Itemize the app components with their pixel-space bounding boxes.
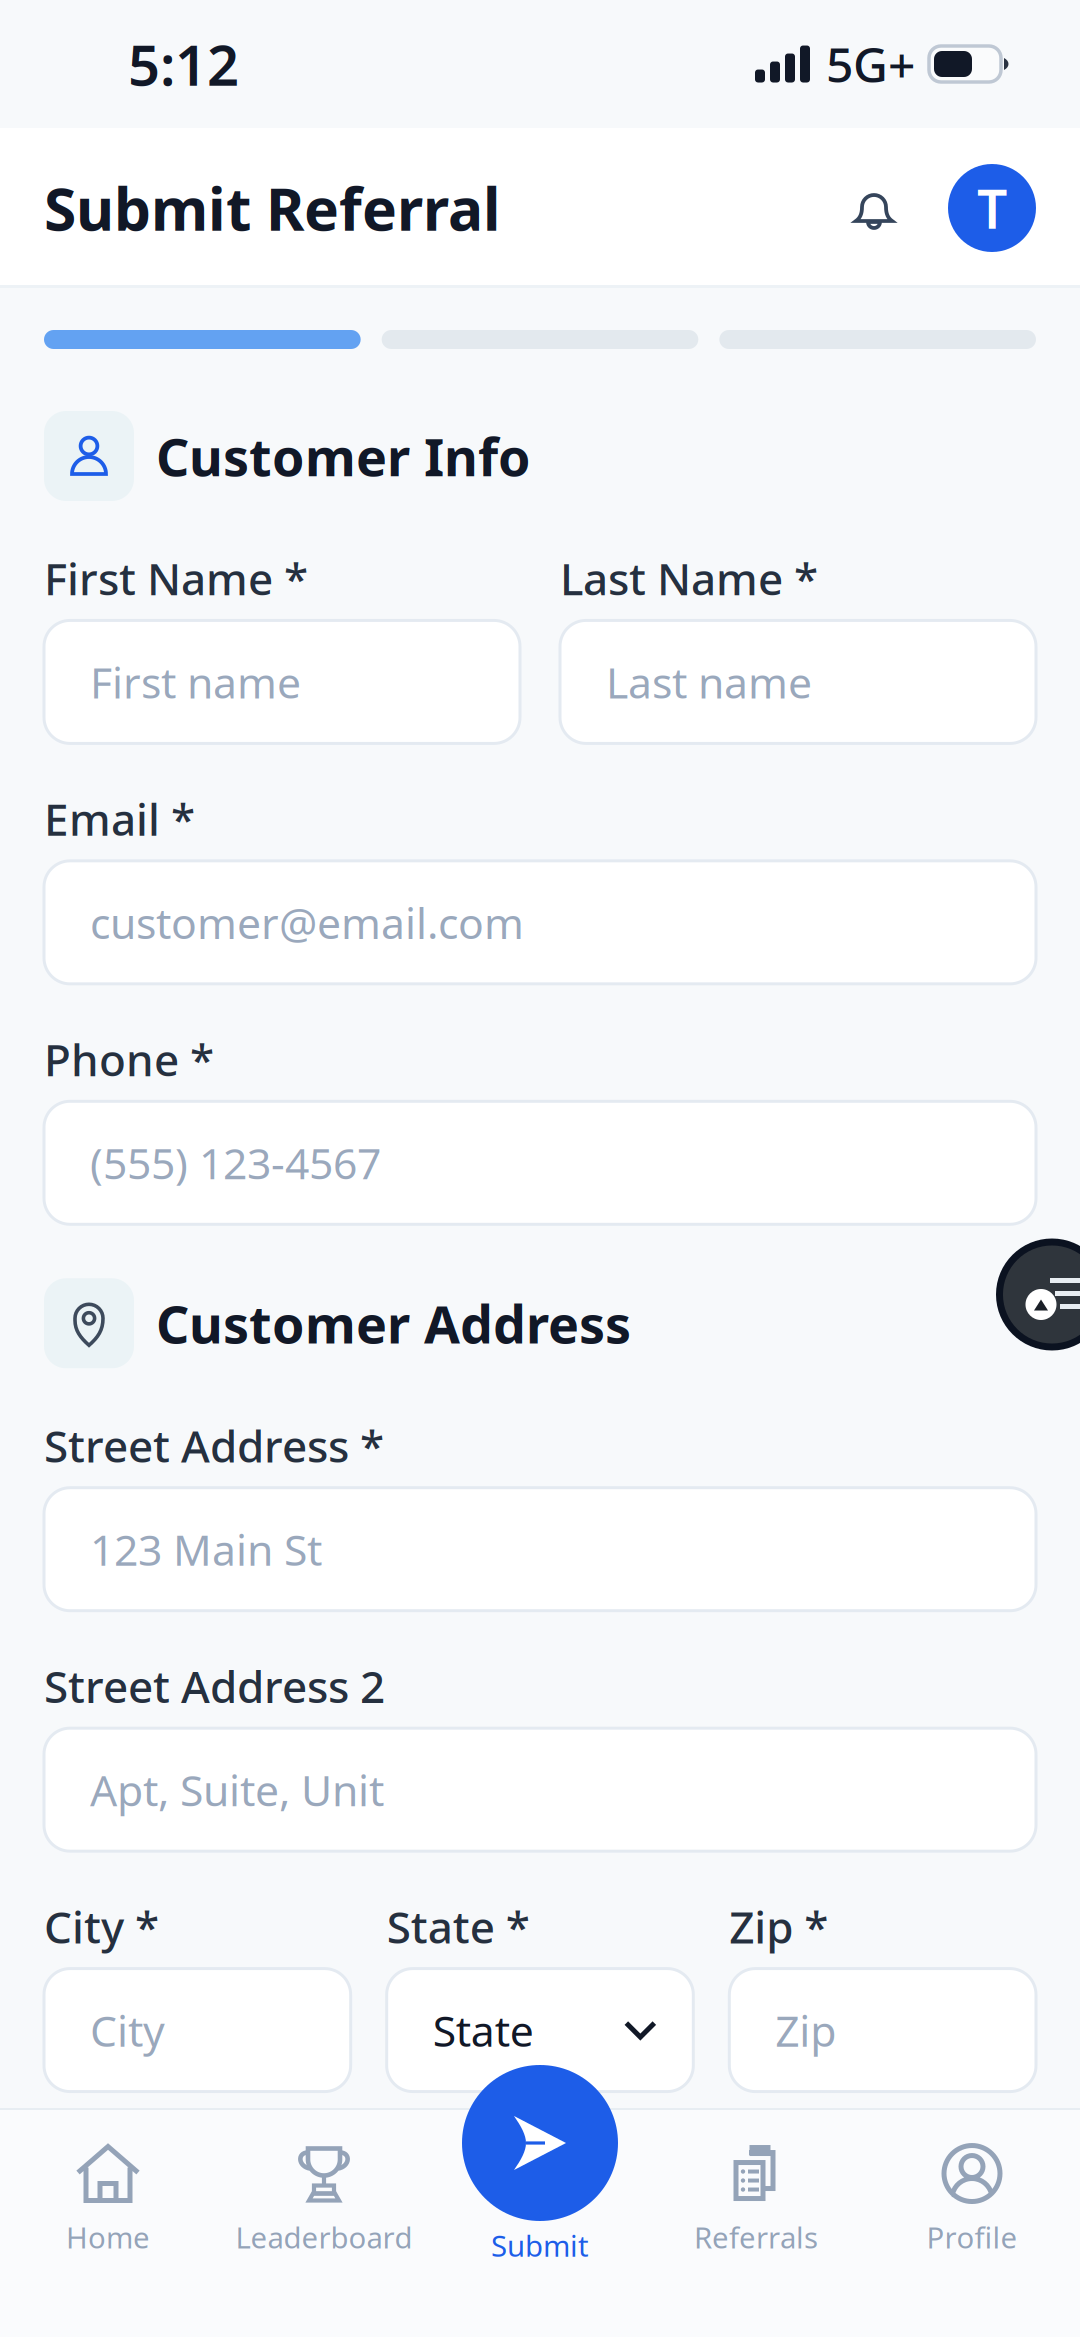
staticText: Home [66, 2217, 150, 2256]
staticText: First name [90, 654, 301, 710]
staticText: Submit Referral [44, 169, 500, 247]
staticText: 123 Main St [90, 1521, 322, 1578]
button[interactable]: Profile [864, 2134, 1080, 2264]
staticText: Street Address * [44, 1416, 384, 1475]
button[interactable]: Last name [560, 620, 1036, 743]
staticText: (555) 123-4567 [90, 1134, 381, 1191]
staticText: Zip * [729, 1897, 828, 1955]
staticText: City [90, 2002, 165, 2058]
staticText: Apt, Suite, Unit [90, 1761, 384, 1818]
button[interactable]: Submit referral [462, 2065, 618, 2221]
button[interactable]: Leaderboard [216, 2134, 432, 2264]
button[interactable]: First name [44, 620, 520, 743]
staticText: Email * [44, 789, 195, 848]
staticText: Leaderboard [235, 2217, 412, 2256]
staticText: Last Name * [560, 549, 818, 607]
staticText: 5G+ [826, 32, 915, 96]
button[interactable]: Zip [729, 1969, 1036, 2092]
button[interactable]: City [44, 1969, 351, 2092]
button[interactable]: 123 Main St [44, 1488, 1036, 1611]
button[interactable]: (555) 123-4567 [44, 1101, 1036, 1224]
staticText: Referrals [694, 2217, 818, 2256]
staticText: Phone * [44, 1030, 214, 1088]
button[interactable]: customer@email.com [44, 861, 1036, 984]
staticText: Submit [491, 2226, 589, 2265]
staticText: State [433, 2002, 534, 2058]
staticText: customer@email.com [90, 894, 524, 951]
button[interactable]: Notifications [826, 160, 922, 256]
button[interactable]: Debug menu [996, 1238, 1080, 1350]
button[interactable]: Home [0, 2134, 216, 2264]
staticText: Zip [775, 2002, 836, 2058]
button[interactable]: Apt, Suite, Unit [44, 1728, 1036, 1851]
staticText: Last name [606, 654, 812, 710]
staticText: Customer Address [156, 1289, 631, 1358]
staticText: Profile [926, 2217, 1017, 2256]
staticText: Customer Info [156, 421, 531, 491]
staticText: T [977, 173, 1007, 243]
staticText: State * [387, 1897, 530, 1955]
button[interactable]: Referrals [648, 2134, 864, 2264]
button[interactable]: Account [948, 164, 1036, 252]
button[interactable]: Submit [432, 2134, 648, 2264]
staticText: Street Address 2 [44, 1657, 385, 1715]
staticText: 5:12 [128, 27, 239, 101]
staticText: City * [44, 1897, 159, 1955]
staticText: First Name * [44, 549, 308, 607]
button[interactable]: State [387, 1969, 693, 2092]
